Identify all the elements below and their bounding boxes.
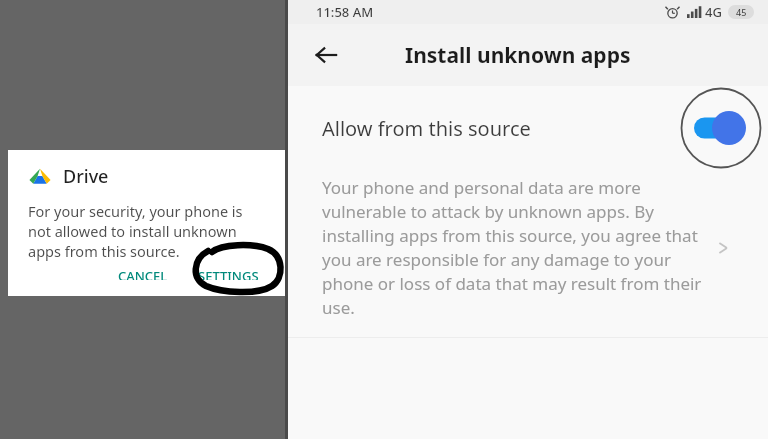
staticText: Install unknown apps [405, 41, 631, 70]
staticText: 11:58 AM [316, 3, 374, 21]
staticText: SETTINGS [198, 267, 259, 280]
button[interactable]: Your phone and personal data are more vu… [288, 170, 768, 337]
button[interactable]: Allow from this source [288, 86, 768, 170]
staticText: Drive [63, 164, 109, 189]
staticText: Allow from this source [322, 115, 531, 142]
staticText: 45 [736, 6, 747, 18]
staticText: Your phone and personal data are more vu… [322, 176, 710, 319]
button[interactable]: Back [304, 33, 348, 77]
staticText: CANCEL [118, 267, 168, 280]
staticText: For your security, your phone is not all… [28, 201, 267, 261]
staticText: 4G [705, 3, 722, 21]
button[interactable]: SETTINGS [190, 261, 267, 286]
button[interactable]: CANCEL [110, 261, 176, 286]
